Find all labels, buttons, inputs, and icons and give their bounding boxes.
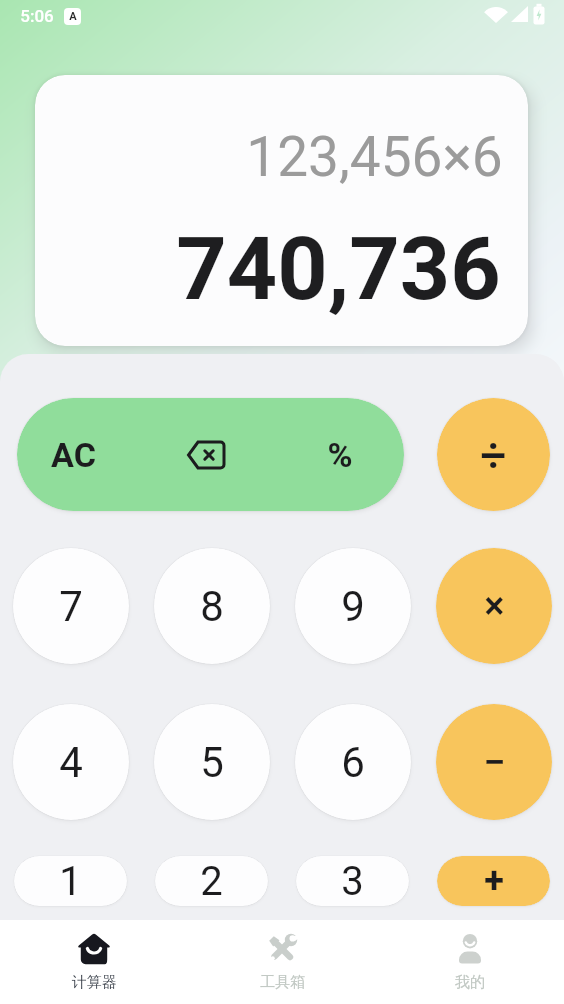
button[interactable]: 9 (295, 548, 411, 664)
button[interactable]: 3 (296, 856, 409, 906)
staticText: ÷ (480, 428, 507, 482)
staticText: 5:06 (20, 6, 54, 26)
button[interactable]: AC (17, 398, 146, 511)
button[interactable] (146, 398, 275, 511)
staticText: 6 (341, 738, 365, 787)
staticText: AC (51, 435, 96, 475)
button[interactable]: × (436, 548, 552, 664)
button[interactable]: 7 (13, 548, 129, 664)
staticText: 740,736 (176, 217, 501, 320)
button[interactable]: ÷ (437, 398, 550, 511)
staticText: 3 (341, 858, 364, 905)
staticText: 7 (59, 582, 83, 631)
staticText: × (484, 584, 505, 629)
staticText: A (69, 10, 77, 23)
staticText: 8 (200, 582, 224, 631)
button[interactable]: 1 (14, 856, 127, 906)
button[interactable]: 5 (154, 704, 270, 820)
staticText: 2 (200, 858, 223, 905)
staticText: − (483, 739, 506, 786)
button[interactable]: % (275, 398, 404, 511)
staticText: + (484, 860, 504, 902)
button[interactable]: 我的 (376, 920, 564, 1004)
staticText: 123,456×6 (246, 125, 503, 189)
staticText: 工具箱 (260, 973, 305, 992)
button[interactable]: 4 (13, 704, 129, 820)
button[interactable]: 8 (154, 548, 270, 664)
button[interactable]: + (437, 856, 550, 906)
staticText: % (327, 435, 353, 475)
button[interactable]: 计算器 (0, 920, 188, 1004)
button[interactable]: 工具箱 (188, 920, 376, 1004)
staticText: 1 (59, 858, 82, 905)
staticText: 4 (59, 738, 83, 787)
button[interactable]: − (436, 704, 552, 820)
staticText: 5 (200, 738, 224, 787)
staticText: 9 (341, 582, 365, 631)
button[interactable]: 2 (155, 856, 268, 906)
button[interactable]: 6 (295, 704, 411, 820)
staticText: 计算器 (72, 973, 117, 992)
staticText: 我的 (455, 973, 485, 992)
